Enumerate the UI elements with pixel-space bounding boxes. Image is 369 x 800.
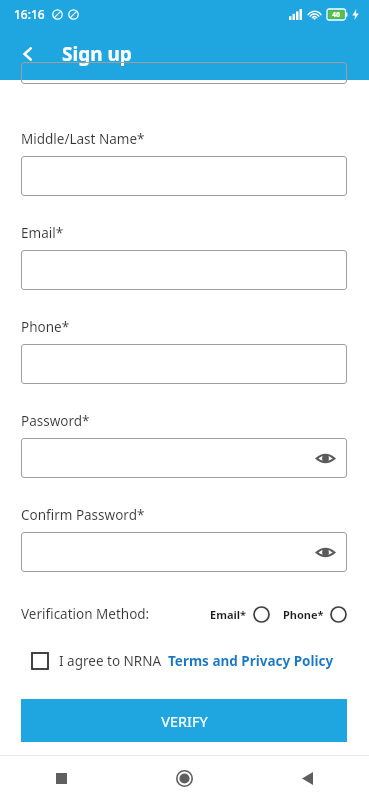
button[interactable]: VERIFY: [21, 699, 347, 742]
button[interactable]: Toggle password visibility: [312, 445, 338, 471]
button[interactable]: Recent apps: [0, 756, 123, 800]
staticText: Verification Method:: [21, 605, 150, 623]
staticText: Terms and Privacy Policy: [168, 652, 334, 670]
staticText: Password*: [21, 412, 90, 430]
staticText: Middle/Last Name*: [21, 130, 145, 148]
button[interactable]: Back: [246, 756, 369, 800]
button[interactable]: [0, 80, 369, 102]
button[interactable]: I agree to NRNA terms checkbox: [28, 649, 52, 673]
button[interactable]: Back: [12, 38, 44, 70]
staticText: Phone*: [21, 318, 70, 336]
staticText: 46: [332, 10, 341, 20]
staticText: Phone*: [283, 607, 324, 622]
button[interactable]: Phone*: [283, 606, 347, 623]
button[interactable]: [21, 250, 347, 290]
staticText: Confirm Password*: [21, 506, 145, 524]
staticText: 16:16: [14, 6, 45, 22]
button[interactable]: Toggle password visibility: [21, 438, 347, 478]
staticText: Email*: [21, 224, 64, 242]
staticText: I agree to NRNA: [59, 652, 162, 670]
button[interactable]: Terms and Privacy Policy: [168, 652, 334, 670]
staticText: Sign up: [62, 41, 132, 67]
staticText: Email*: [210, 607, 247, 622]
button[interactable]: Home: [123, 756, 246, 800]
button[interactable]: Toggle password visibility: [21, 532, 347, 572]
staticText: VERIFY: [161, 711, 208, 731]
button[interactable]: Email*: [210, 606, 270, 623]
button[interactable]: [21, 344, 347, 384]
button[interactable]: Toggle password visibility: [312, 539, 338, 565]
button[interactable]: [21, 156, 347, 196]
